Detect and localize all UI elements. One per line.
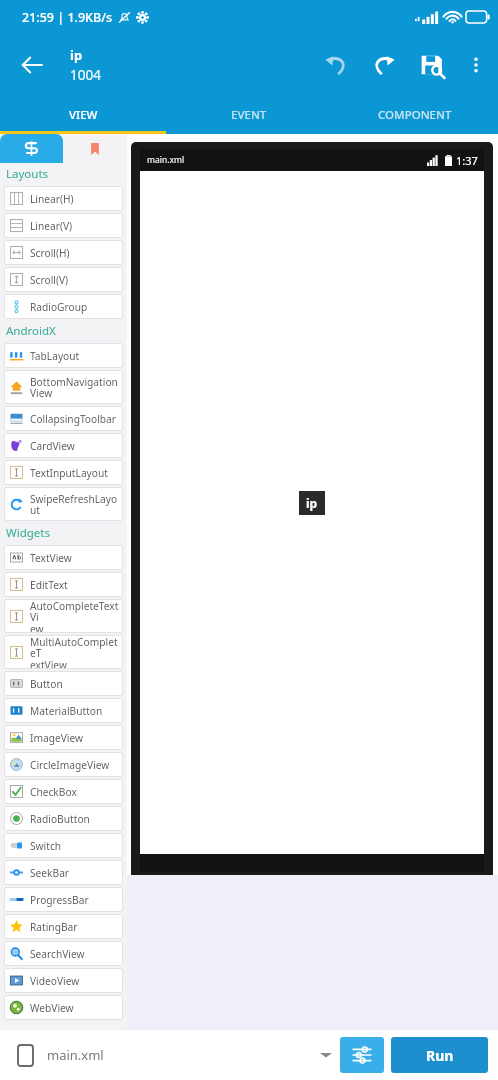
staticText: TextView <box>30 551 72 565</box>
staticText: SeekBar <box>30 866 70 880</box>
button[interactable]: Run <box>391 1037 488 1073</box>
staticText: Switch <box>30 839 62 853</box>
button[interactable]: BottomNavigation View <box>4 370 123 404</box>
staticText: MaterialButton <box>30 704 103 718</box>
button[interactable]: SwipeRefreshLayo ut <box>4 487 123 521</box>
button[interactable]: EditText <box>4 572 123 597</box>
button[interactable]: More options <box>456 45 496 85</box>
button[interactable]: ip <box>306 495 318 511</box>
staticText: Layouts <box>6 166 49 182</box>
staticText: AutoCompleteTextVi ew <box>30 599 123 633</box>
staticText: Scroll(V) <box>30 273 69 287</box>
staticText: RatingBar <box>30 920 78 934</box>
button[interactable]: RatingBar <box>4 914 123 939</box>
staticText: WebView <box>30 1001 74 1015</box>
button[interactable]: MultiAutoCompleteT extView <box>4 635 123 669</box>
staticText: CardView <box>30 439 75 453</box>
button[interactable]: Favorites <box>63 134 127 163</box>
staticText: Widgets <box>6 525 50 541</box>
button[interactable]: EVENT <box>166 96 332 134</box>
staticText: AndroidX <box>6 323 56 339</box>
button[interactable]: TextView <box>4 545 123 570</box>
staticText: CircleImageView <box>30 758 110 772</box>
button[interactable]: ImageView <box>4 725 123 750</box>
staticText: Scroll(H) <box>30 246 70 260</box>
staticText: TextInputLayout <box>30 466 108 480</box>
button[interactable]: Button <box>4 671 123 696</box>
staticText: 1:37 <box>456 153 478 168</box>
staticText: SearchView <box>30 947 85 961</box>
staticText: RadioButton <box>30 812 90 826</box>
staticText: COMPONENT <box>378 107 452 123</box>
staticText: main.xml <box>147 154 185 166</box>
button[interactable]: Linear(H) <box>4 186 123 211</box>
staticText: ip <box>306 495 318 511</box>
button[interactable]: Settings <box>340 1037 384 1073</box>
staticText: TabLayout <box>30 349 80 363</box>
button[interactable]: ProgressBar <box>4 887 123 912</box>
button[interactable]: TextInputLayout <box>4 460 123 485</box>
button[interactable]: main.xml <box>10 1030 340 1080</box>
button[interactable]: Scroll(H) <box>4 240 123 265</box>
button[interactable]: AutoCompleteTextVi ew <box>4 599 123 633</box>
button[interactable]: SearchView <box>4 941 123 966</box>
staticText: CollapsingToolbar <box>30 412 117 426</box>
button[interactable]: RadioButton <box>4 806 123 831</box>
button[interactable]: Back <box>10 43 54 87</box>
staticText: ip <box>70 46 83 64</box>
staticText: RadioGroup <box>30 300 88 314</box>
staticText: ImageView <box>30 731 83 745</box>
staticText: 1004 <box>70 66 101 84</box>
staticText: SwipeRefreshLayo ut <box>30 492 118 517</box>
button[interactable]: WebView <box>4 995 123 1020</box>
staticText: Run <box>426 1046 454 1065</box>
button[interactable]: COMPONENT <box>332 96 498 134</box>
button[interactable]: Undo <box>312 41 360 89</box>
button[interactable]: TabLayout <box>4 343 123 368</box>
staticText: CheckBox <box>30 785 77 799</box>
staticText: EVENT <box>231 107 267 123</box>
staticText: MultiAutoCompleteT extView <box>30 635 123 669</box>
button[interactable]: MaterialButton <box>4 698 123 723</box>
button[interactable]: Scroll(V) <box>4 267 123 292</box>
button[interactable]: VIEW <box>0 96 166 134</box>
button[interactable]: SeekBar <box>4 860 123 885</box>
staticText: EditText <box>30 578 68 592</box>
button[interactable]: CheckBox <box>4 779 123 804</box>
staticText: VideoView <box>30 974 80 988</box>
button[interactable]: CardView <box>4 433 123 458</box>
button[interactable]: Redo <box>360 41 408 89</box>
button[interactable]: Widgets <box>0 134 63 163</box>
button[interactable]: Switch <box>4 833 123 858</box>
staticText: 21:59 | 1.9KB/s <box>22 9 113 26</box>
staticText: BottomNavigation View <box>30 375 118 400</box>
button[interactable]: RadioGroup <box>4 294 123 319</box>
staticText: Linear(V) <box>30 219 73 233</box>
staticText: Button <box>30 677 63 691</box>
staticText: Linear(H) <box>30 192 74 206</box>
staticText: main.xml <box>47 1046 104 1064</box>
staticText: VIEW <box>69 107 98 123</box>
button[interactable]: Save <box>408 41 456 89</box>
button[interactable]: CollapsingToolbar <box>4 406 123 431</box>
button[interactable]: Linear(V) <box>4 213 123 238</box>
staticText: ProgressBar <box>30 893 89 907</box>
button[interactable]: VideoView <box>4 968 123 993</box>
button[interactable]: CircleImageView <box>4 752 123 777</box>
